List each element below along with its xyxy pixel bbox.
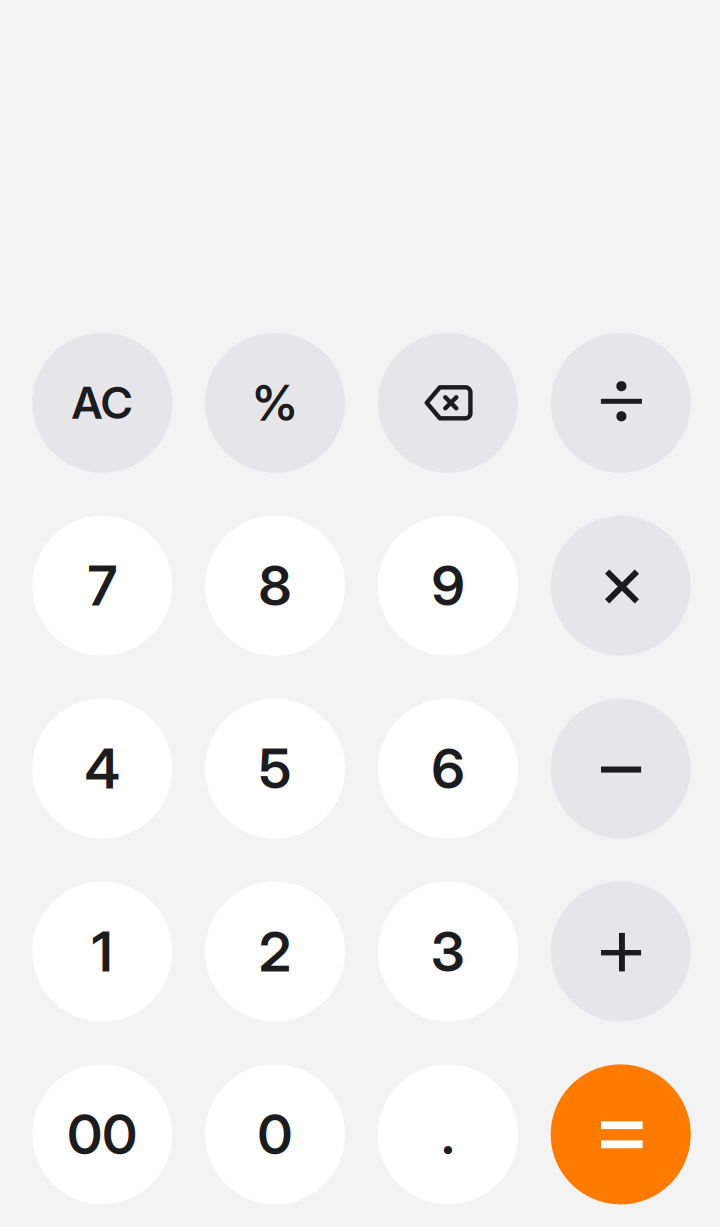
staticText: 3 xyxy=(431,918,465,984)
button[interactable]: 00 xyxy=(32,1064,172,1204)
button[interactable]: Equals xyxy=(551,1064,691,1204)
staticText: 1 xyxy=(92,918,113,984)
staticText: 5 xyxy=(259,735,291,802)
staticText: 00 xyxy=(67,1101,137,1167)
staticText: 8 xyxy=(259,553,292,619)
button[interactable]: 4 xyxy=(32,699,172,839)
staticText: % xyxy=(253,373,298,433)
button[interactable]: Divide xyxy=(551,333,691,473)
staticText: 9 xyxy=(431,553,464,619)
button[interactable]: 3 xyxy=(378,881,518,1021)
button[interactable]: 1 xyxy=(32,881,172,1021)
button[interactable]: Plus xyxy=(551,881,691,1021)
button[interactable]: 0 xyxy=(205,1064,345,1204)
staticText: 6 xyxy=(431,735,464,802)
button[interactable]: Backspace xyxy=(378,333,518,473)
staticText: 7 xyxy=(88,553,117,619)
button[interactable]: . xyxy=(378,1064,518,1204)
staticText: 2 xyxy=(259,918,291,984)
button[interactable]: 9 xyxy=(378,516,518,656)
staticText: 4 xyxy=(85,735,120,802)
staticText: 0 xyxy=(258,1101,293,1167)
staticText: AC xyxy=(72,376,133,429)
button[interactable]: AC xyxy=(32,333,172,473)
button[interactable]: 6 xyxy=(378,699,518,839)
button[interactable]: 5 xyxy=(205,699,345,839)
button[interactable]: 8 xyxy=(205,516,345,656)
staticText: . xyxy=(441,1101,454,1167)
button[interactable]: Minus xyxy=(551,699,691,839)
button[interactable]: 7 xyxy=(32,516,172,656)
button[interactable]: Multiply xyxy=(551,516,691,656)
button[interactable]: 2 xyxy=(205,881,345,1021)
button[interactable]: % xyxy=(205,333,345,473)
